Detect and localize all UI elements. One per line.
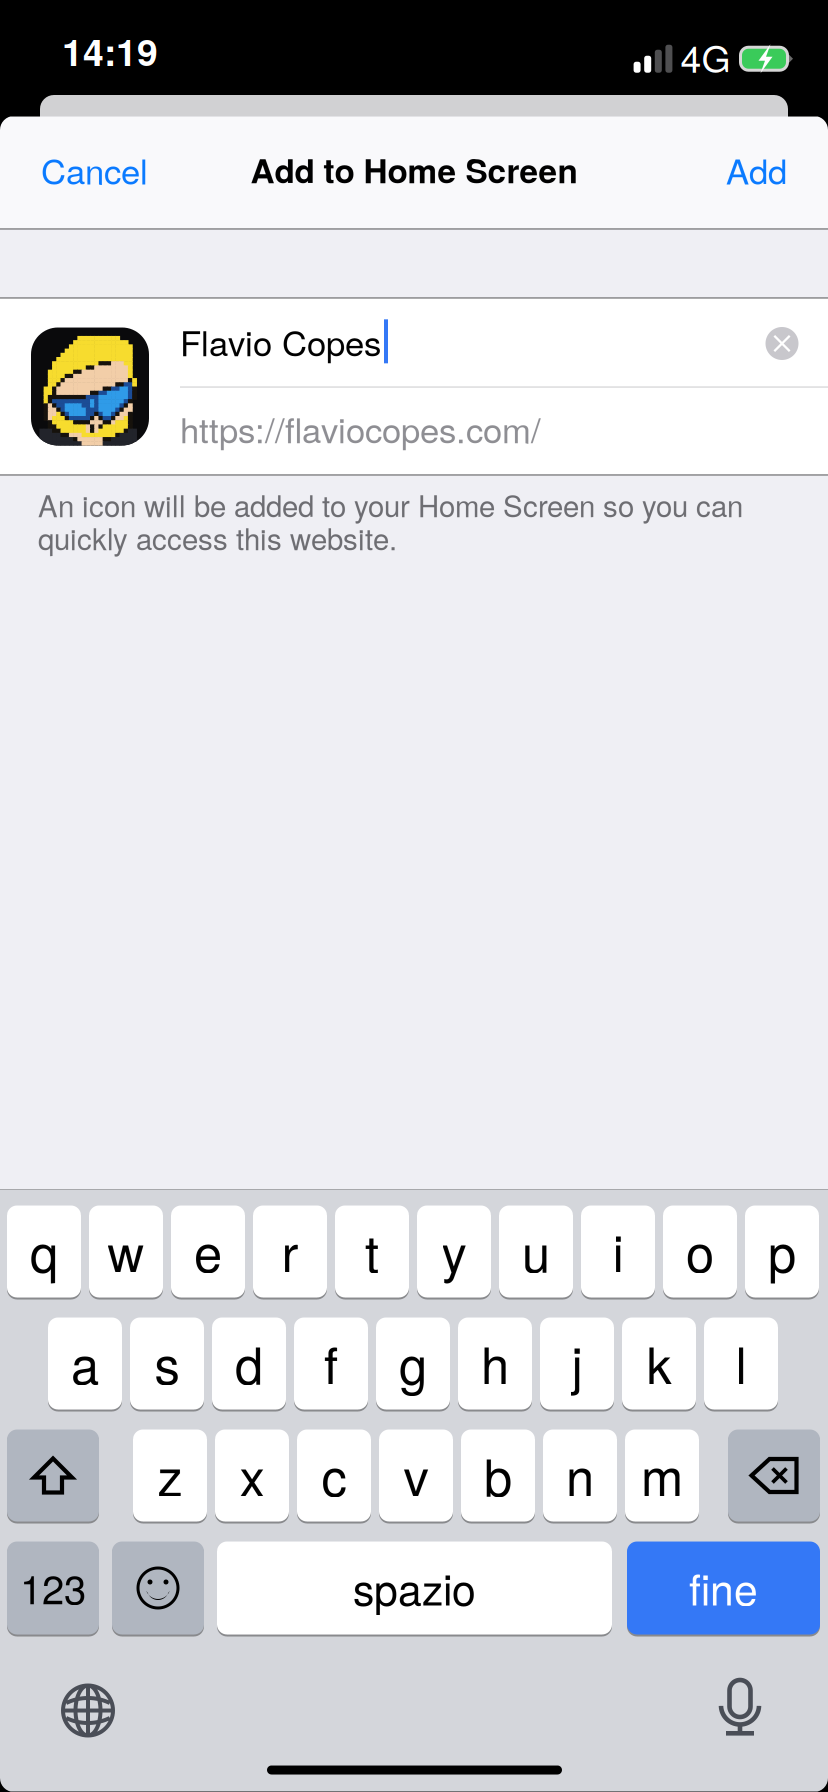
staticText: f — [324, 1326, 338, 1399]
staticText: g — [399, 1326, 427, 1399]
button[interactable]: Clear text — [747, 308, 817, 378]
button[interactable]: g — [376, 1316, 450, 1410]
staticText: 4G — [680, 30, 730, 83]
button[interactable]: o — [663, 1204, 737, 1298]
staticText: r — [281, 1214, 298, 1287]
button[interactable]: fine — [627, 1540, 820, 1635]
staticText: o — [686, 1214, 714, 1287]
button[interactable]: p — [745, 1204, 819, 1298]
button[interactable]: v — [379, 1428, 453, 1522]
button[interactable]: k — [622, 1316, 696, 1410]
staticText: i — [612, 1214, 623, 1287]
button[interactable]: d — [212, 1316, 286, 1410]
button[interactable]: Add — [708, 126, 805, 219]
button[interactable]: z — [133, 1428, 207, 1522]
button[interactable]: Next keyboard — [38, 1660, 138, 1760]
staticText: p — [768, 1214, 796, 1287]
button[interactable]: j — [540, 1316, 614, 1410]
staticText: u — [522, 1214, 550, 1287]
staticText: b — [484, 1438, 512, 1511]
button[interactable]: s — [130, 1316, 204, 1410]
staticText: s — [154, 1326, 179, 1399]
staticText: y — [441, 1214, 466, 1287]
button[interactable]: x — [215, 1428, 289, 1522]
button[interactable]: h — [458, 1316, 532, 1410]
staticText: Flavio Copes — [180, 316, 381, 366]
staticText: w — [107, 1214, 144, 1287]
button[interactable]: Cancel — [23, 126, 166, 219]
staticText: c — [321, 1438, 346, 1511]
staticText: a — [71, 1326, 99, 1399]
staticText: l — [735, 1326, 746, 1399]
staticText: h — [481, 1326, 509, 1399]
staticText: Add to Home Screen — [250, 146, 577, 193]
staticText: k — [646, 1326, 671, 1399]
button[interactable]: c — [297, 1428, 371, 1522]
staticText: j — [571, 1326, 582, 1399]
button[interactable]: Dictation — [690, 1657, 790, 1757]
button[interactable]: l — [704, 1316, 778, 1410]
button[interactable]: m — [625, 1428, 699, 1522]
staticText: t — [365, 1214, 379, 1287]
button[interactable]: spazio — [217, 1540, 612, 1635]
button[interactable]: a — [48, 1316, 122, 1410]
staticText: n — [566, 1438, 594, 1511]
staticText: 14:19 — [62, 24, 158, 77]
staticText: m — [641, 1438, 683, 1511]
button[interactable]: Emoji — [112, 1540, 204, 1635]
button[interactable]: e — [171, 1204, 245, 1298]
staticText: https://flaviocopes.com/ — [180, 403, 541, 453]
button[interactable]: f — [294, 1316, 368, 1410]
staticText: v — [403, 1438, 428, 1511]
button[interactable]: t — [335, 1204, 409, 1298]
staticText: spazio — [353, 1556, 476, 1618]
button[interactable]: q — [7, 1204, 81, 1298]
button[interactable]: y — [417, 1204, 491, 1298]
staticText: z — [157, 1438, 182, 1511]
button[interactable]: u — [499, 1204, 573, 1298]
staticText: fine — [689, 1556, 758, 1618]
staticText: Cancel — [41, 145, 148, 194]
button[interactable]: n — [543, 1428, 617, 1522]
button[interactable]: r — [253, 1204, 327, 1298]
staticText: quickly access this website. — [38, 516, 397, 558]
button[interactable]: b — [461, 1428, 535, 1522]
staticText: x — [239, 1438, 264, 1511]
staticText: d — [235, 1326, 263, 1399]
button[interactable]: 123 — [7, 1540, 99, 1635]
staticText: An icon will be added to your Home Scree… — [38, 483, 743, 525]
button[interactable]: w — [89, 1204, 163, 1298]
staticText: 123 — [20, 1558, 86, 1616]
button[interactable]: Delete — [728, 1428, 820, 1522]
staticText: e — [194, 1214, 222, 1287]
staticText: q — [30, 1214, 58, 1287]
button[interactable]: i — [581, 1204, 655, 1298]
button[interactable]: Shift — [7, 1428, 99, 1522]
staticText: Add — [726, 145, 787, 194]
